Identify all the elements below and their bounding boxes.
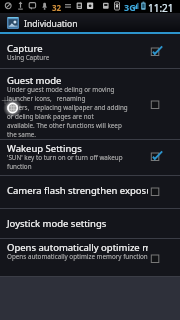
staticText: 32	[52, 2, 62, 13]
staticText: Capture	[7, 42, 43, 55]
button[interactable]: Camera flash strengthen exposure	[0, 176, 180, 208]
button[interactable]: Wakeup Settings	[0, 140, 180, 175]
staticText: Wakeup Settings	[7, 142, 82, 155]
staticText: Opens automatically optimize memory	[7, 241, 148, 254]
button[interactable]: Unchecked	[143, 249, 169, 271]
staticText: Under guest mode deling or moving launch…	[7, 85, 128, 137]
button[interactable]: Opens automatically optimize memory	[0, 239, 180, 276]
staticText: 11:21	[148, 1, 174, 14]
button[interactable]: Joystick mode settings	[0, 209, 180, 238]
button[interactable]: Unchecked	[143, 182, 169, 204]
staticText: Joystick mode settings	[7, 217, 107, 230]
staticText: 3G	[124, 1, 136, 13]
button[interactable]: Capture	[0, 34, 180, 68]
staticText: Guest mode	[7, 74, 62, 87]
button[interactable]: Unchecked	[143, 95, 169, 117]
staticText: Camera flash strengthen exposure	[7, 184, 148, 197]
staticText: Using Capture	[7, 53, 50, 62]
staticText: Individuation	[24, 18, 78, 30]
staticText: Opens automatically optimize memory func…	[7, 252, 148, 261]
button[interactable]: Checked	[143, 147, 169, 169]
button[interactable]: Checked	[143, 42, 169, 64]
button[interactable]: App icon	[7, 17, 19, 29]
button[interactable]: Guest mode	[0, 69, 180, 139]
staticText: 'SUN' key to turn on or turn off wakeup …	[7, 153, 148, 171]
